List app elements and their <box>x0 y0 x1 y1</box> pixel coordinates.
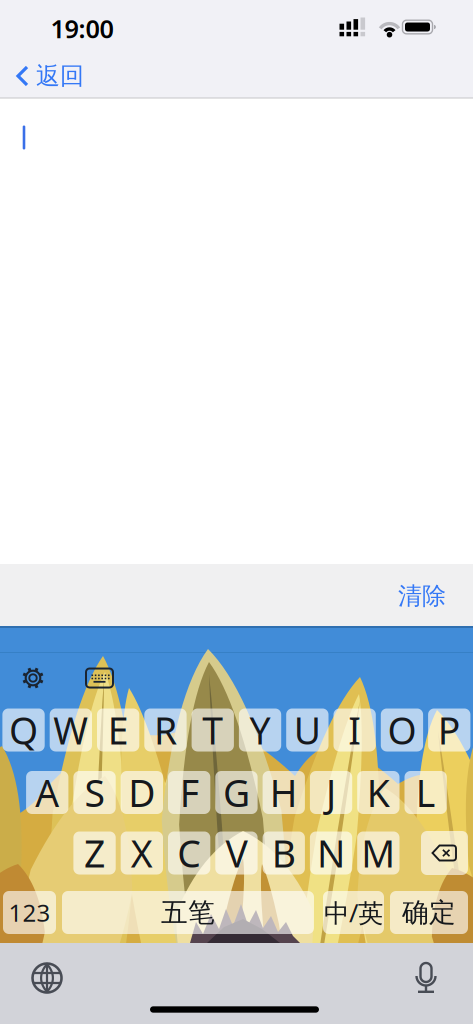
button[interactable]: E <box>97 708 139 751</box>
button[interactable]: Keyboard settings <box>16 663 50 693</box>
button[interactable]: Y <box>239 708 281 751</box>
staticText: Z <box>84 828 105 878</box>
staticText: M <box>361 828 395 878</box>
staticText: U <box>294 705 321 755</box>
button[interactable]: L <box>404 771 447 814</box>
button[interactable]: W <box>50 708 92 751</box>
button[interactable]: N <box>310 831 352 874</box>
button[interactable]: S <box>73 771 116 814</box>
staticText: Y <box>250 705 271 755</box>
button[interactable]: X <box>121 831 163 874</box>
staticText: E <box>108 705 129 755</box>
button[interactable]: Z <box>73 831 116 874</box>
staticText: R <box>154 705 177 755</box>
button[interactable]: Dictate <box>409 959 443 997</box>
button[interactable]: D <box>121 771 163 814</box>
staticText: J <box>326 768 336 817</box>
staticText: 清除 <box>398 581 446 611</box>
button[interactable]: Delete <box>421 831 468 875</box>
button[interactable]: O <box>381 708 423 751</box>
button[interactable]: V <box>215 831 258 874</box>
staticText: 123 <box>8 897 50 928</box>
staticText: B <box>272 828 296 878</box>
staticText: L <box>416 768 436 817</box>
button[interactable]: P <box>428 708 470 751</box>
staticText: C <box>177 828 201 878</box>
button[interactable]: Next keyboard <box>28 959 66 997</box>
staticText: W <box>53 705 88 755</box>
staticText: 返回 <box>36 61 84 91</box>
button[interactable]: 清除 <box>390 576 454 616</box>
button[interactable]: A <box>26 771 68 814</box>
staticText: N <box>317 828 345 878</box>
staticText: G <box>223 768 250 817</box>
button[interactable]: Q <box>2 708 45 751</box>
staticText: V <box>225 828 247 878</box>
staticText: T <box>202 705 223 755</box>
staticText: A <box>35 768 59 817</box>
staticText: 五笔 <box>161 896 215 929</box>
staticText: O <box>387 705 416 755</box>
button[interactable]: M <box>357 831 399 874</box>
button[interactable]: J <box>310 771 352 814</box>
staticText: 19:00 <box>50 12 113 45</box>
button[interactable]: H <box>263 771 305 814</box>
staticText: D <box>128 768 155 817</box>
button[interactable]: 五笔 <box>62 891 314 934</box>
button[interactable]: R <box>144 708 187 751</box>
button[interactable]: 确定 <box>390 891 468 934</box>
button[interactable]: U <box>286 708 328 751</box>
button[interactable]: 返回 <box>14 59 86 93</box>
button[interactable]: F <box>168 771 210 814</box>
staticText: I <box>348 705 361 755</box>
staticText: 确定 <box>402 896 456 929</box>
staticText: 中/英 <box>324 896 383 929</box>
button[interactable]: I <box>333 708 376 751</box>
staticText: Q <box>9 705 38 755</box>
button[interactable]: B <box>263 831 305 874</box>
button[interactable]: C <box>168 831 210 874</box>
button[interactable]: Switch keyboard <box>82 665 116 691</box>
staticText: H <box>270 768 298 817</box>
staticText: X <box>131 828 153 878</box>
staticText: P <box>438 705 461 755</box>
staticText: K <box>367 768 390 817</box>
button[interactable]: T <box>192 708 234 751</box>
staticText: S <box>85 768 105 817</box>
button[interactable]: 中/英 <box>323 891 384 934</box>
button[interactable]: 123 <box>3 891 56 934</box>
button[interactable]: G <box>215 771 258 814</box>
button[interactable]: K <box>357 771 399 814</box>
staticText: F <box>180 768 199 817</box>
